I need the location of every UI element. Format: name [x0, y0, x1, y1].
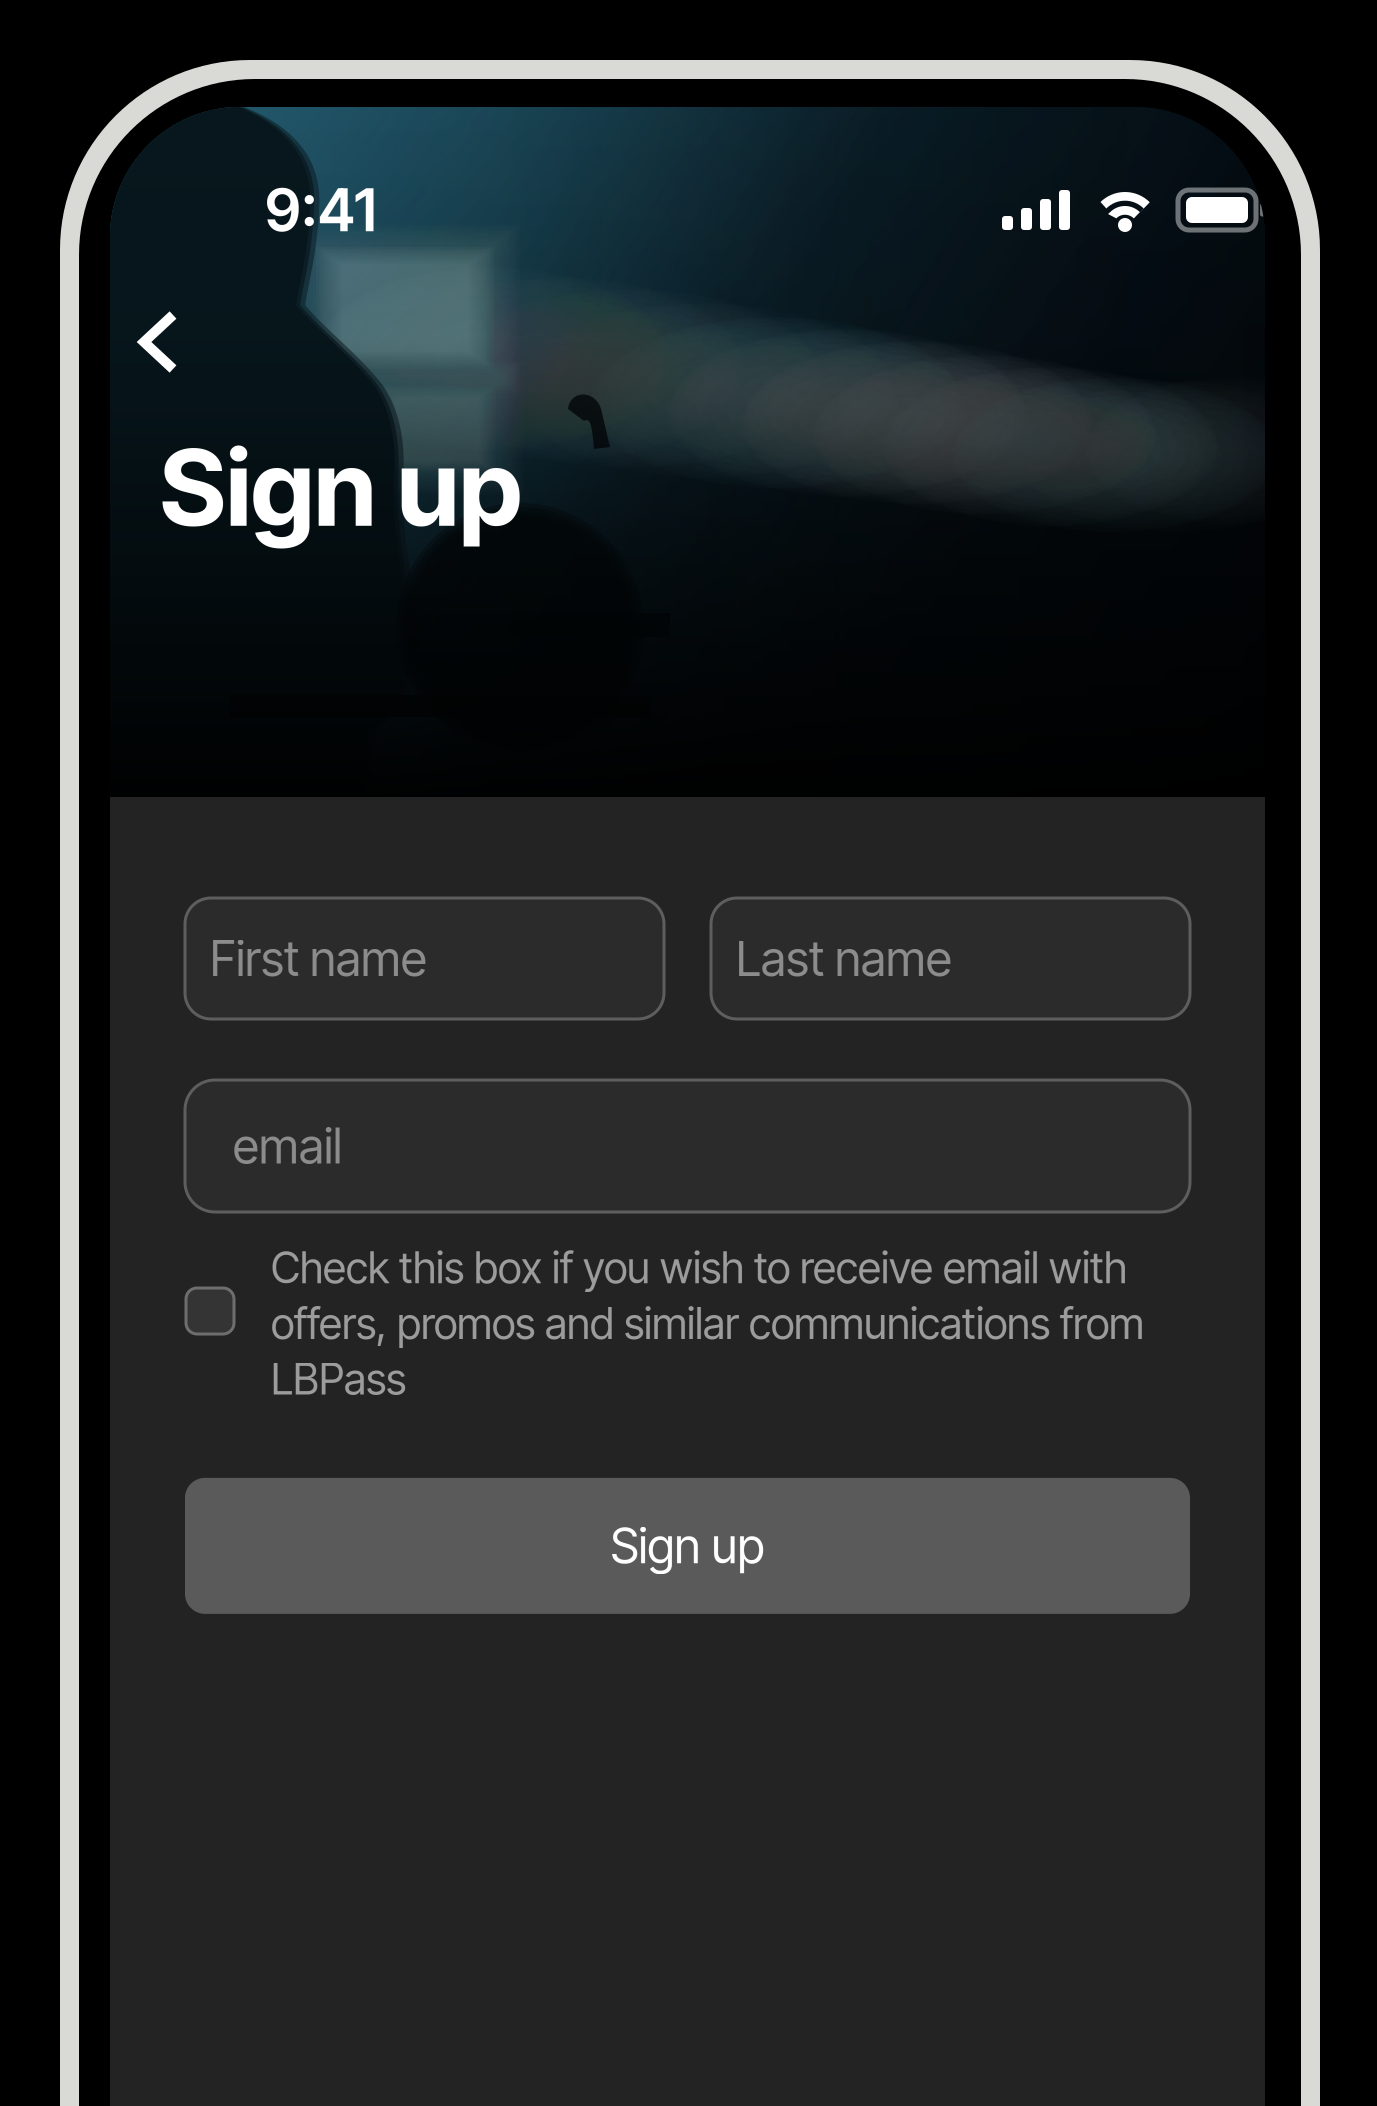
staticText: Sign up [610, 1517, 764, 1575]
staticText: email [233, 1117, 342, 1175]
staticText: First name [210, 929, 427, 988]
staticText: Check this box if you wish to receive em… [271, 1242, 1144, 1405]
staticText: Last name [736, 929, 952, 988]
button[interactable]: Back [122, 296, 195, 394]
button[interactable]: Sign up [185, 1478, 1190, 1614]
staticText: 9:41 [265, 174, 377, 245]
button[interactable]: Receive email offers [185, 1242, 234, 1334]
staticText: Sign up [160, 424, 522, 551]
